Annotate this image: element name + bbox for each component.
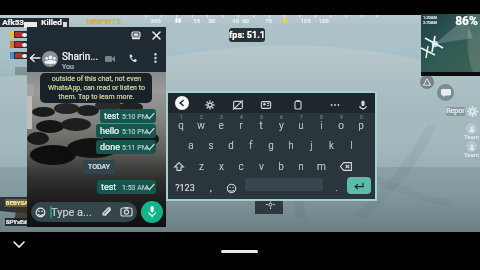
button[interactable]: b xyxy=(271,156,291,178)
staticText: q xyxy=(178,120,184,132)
staticText: y xyxy=(279,120,284,132)
button[interactable]: Emoji xyxy=(222,178,240,198)
button[interactable]: d xyxy=(221,135,241,157)
button[interactable]: h xyxy=(281,135,301,157)
staticText: 4 xyxy=(240,114,243,120)
button[interactable]: outside of this chat, not even WhatsApp,… xyxy=(40,73,152,103)
button[interactable]: Video call xyxy=(100,51,119,67)
button[interactable]: Alert xyxy=(420,75,434,89)
button[interactable]: n xyxy=(291,156,311,178)
button[interactable]: Chat xyxy=(437,84,454,101)
button[interactable]: Contact xyxy=(259,98,273,112)
button[interactable]: Attach xyxy=(97,203,114,220)
staticText: SPYxEditor xyxy=(5,218,29,226)
button[interactable]: z xyxy=(191,156,211,178)
staticText: You xyxy=(62,63,74,71)
staticText: ?123 xyxy=(175,183,195,194)
button[interactable]: Clipboard xyxy=(291,98,305,112)
button[interactable]: k xyxy=(321,135,341,157)
staticText: s xyxy=(208,140,214,152)
button[interactable]: x xyxy=(211,156,231,178)
button[interactable]: Voice message xyxy=(141,201,163,223)
button[interactable]: Move keyboard xyxy=(264,198,277,211)
button[interactable]: More xyxy=(328,98,342,112)
button[interactable]: Backspace xyxy=(334,156,357,177)
button[interactable]: Camera xyxy=(118,203,135,220)
button[interactable]: Report xyxy=(446,107,465,116)
button[interactable]: More options xyxy=(148,49,162,67)
button[interactable]: s xyxy=(201,135,221,157)
staticText: 1:20AM 2:70AM xyxy=(423,15,437,25)
button[interactable]: Voice call xyxy=(124,49,142,67)
button[interactable]: Settings xyxy=(465,104,479,118)
button[interactable]: Collapse xyxy=(10,236,28,252)
staticText: i xyxy=(320,120,323,132)
button[interactable]: 2 xyxy=(191,113,211,135)
button[interactable]: 7 xyxy=(291,113,311,135)
button[interactable]: Back xyxy=(175,96,189,110)
staticText: f xyxy=(249,140,253,152)
button[interactable]: j xyxy=(301,135,321,157)
button[interactable]: Team xyxy=(463,123,479,139)
button[interactable]: , xyxy=(204,178,218,198)
button[interactable]: 4 xyxy=(231,113,251,135)
staticText: Report xyxy=(446,107,465,116)
staticText: Team xyxy=(464,133,479,140)
staticText: 45 xyxy=(232,17,239,24)
staticText: 8 xyxy=(320,114,323,120)
button[interactable]: Shift xyxy=(168,156,189,177)
button[interactable]: Close xyxy=(147,27,166,43)
button[interactable]: Picture in picture xyxy=(126,27,146,43)
staticText: hello xyxy=(100,126,120,137)
staticText: r xyxy=(239,120,243,132)
button[interactable]: 3 xyxy=(211,113,231,135)
button[interactable]: 1 xyxy=(171,113,191,135)
staticText: 7 xyxy=(300,114,303,120)
button[interactable]: 0 xyxy=(351,113,371,135)
staticText: 5:10 PM xyxy=(122,128,148,136)
button[interactable]: hello xyxy=(96,124,156,138)
button[interactable]: done xyxy=(96,140,156,154)
button[interactable]: c xyxy=(231,156,251,178)
button[interactable]: Stickers off xyxy=(231,98,245,112)
staticText: 30 xyxy=(208,17,215,24)
staticText: Type a... xyxy=(51,206,92,219)
button[interactable]: ?123 xyxy=(170,178,200,198)
staticText: o xyxy=(338,120,344,132)
button[interactable]: 6 xyxy=(271,113,291,135)
button[interactable] xyxy=(43,47,105,69)
button[interactable]: 9 xyxy=(331,113,351,135)
button[interactable]: Settings xyxy=(203,98,217,112)
staticText: g xyxy=(268,140,274,152)
button[interactable]: test xyxy=(97,180,156,194)
button[interactable]: Back xyxy=(27,51,43,65)
staticText: e xyxy=(218,120,224,132)
button[interactable]: l xyxy=(341,135,361,157)
button[interactable]: 8 xyxy=(311,113,331,135)
button[interactable]: g xyxy=(261,135,281,157)
button[interactable]: Type a... xyxy=(31,202,137,222)
staticText: c xyxy=(238,161,244,173)
staticText: 60 xyxy=(242,17,249,24)
button[interactable]: Team xyxy=(463,141,479,157)
staticText: , xyxy=(210,183,212,194)
button[interactable]: a xyxy=(181,135,201,157)
staticText: test xyxy=(101,182,117,193)
button[interactable]: 5 xyxy=(251,113,271,135)
button[interactable]: . xyxy=(329,178,343,198)
staticText: l xyxy=(350,140,353,152)
staticText: m xyxy=(317,161,326,173)
staticText: v xyxy=(259,161,264,173)
staticText: 6 xyxy=(280,114,283,120)
button[interactable]: v xyxy=(251,156,271,178)
staticText: 9 xyxy=(340,114,343,120)
button[interactable]: test xyxy=(100,109,156,123)
button[interactable]: Voice input xyxy=(356,98,370,112)
staticText: Sharin... xyxy=(62,51,99,63)
staticText: 1:53 AM xyxy=(122,184,148,192)
staticText: E xyxy=(283,16,288,25)
button[interactable]: m xyxy=(311,156,331,178)
button[interactable]: Enter xyxy=(347,177,371,194)
button[interactable]: f xyxy=(241,135,261,157)
